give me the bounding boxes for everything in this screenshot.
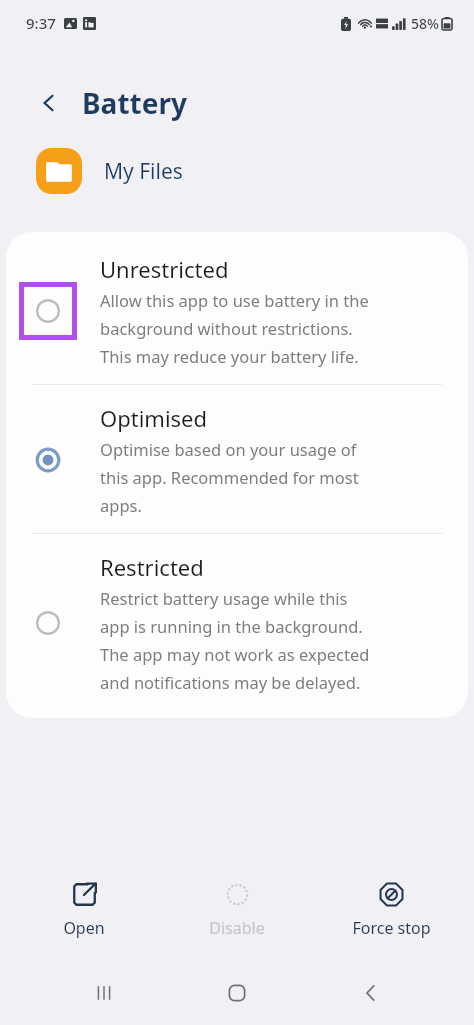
- staticText: Optimised: [100, 403, 208, 433]
- staticText: Unrestricted: [100, 254, 229, 284]
- button[interactable]: Open: [14, 873, 154, 947]
- button[interactable]: Back: [28, 82, 70, 124]
- button[interactable]: Unrestricted: [6, 232, 468, 384]
- staticText: Optimise based on your usage of this app…: [100, 438, 359, 517]
- button[interactable]: Back: [341, 969, 401, 1017]
- staticText: Open: [63, 917, 105, 939]
- staticText: Restrict battery usage while this app is…: [100, 587, 370, 694]
- button[interactable]: Optimised: [6, 385, 468, 533]
- staticText: Battery: [82, 84, 187, 122]
- staticText: My Files: [104, 157, 183, 186]
- staticText: Disable: [209, 917, 265, 939]
- staticText: 58%: [411, 14, 439, 33]
- staticText: Restricted: [100, 552, 204, 582]
- button[interactable]: My Files: [0, 140, 474, 202]
- staticText: 9:37: [26, 13, 56, 33]
- staticText: Allow this app to use battery in the bac…: [100, 289, 369, 368]
- button[interactable]: Recents: [74, 969, 134, 1017]
- button[interactable]: Force stop: [321, 873, 461, 947]
- button[interactable]: Home: [207, 969, 267, 1017]
- button: Disable: [167, 873, 307, 947]
- staticText: Force stop: [352, 917, 431, 939]
- button[interactable]: Restricted: [6, 534, 468, 718]
